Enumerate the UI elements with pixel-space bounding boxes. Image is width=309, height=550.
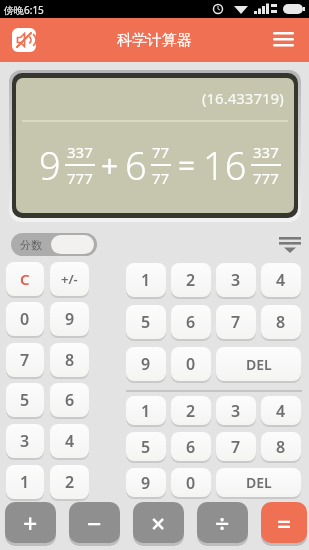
staticText: 8 <box>276 436 286 458</box>
button[interactable]: 1 <box>6 465 44 499</box>
staticText: 3 <box>231 269 241 291</box>
staticText: 7 <box>20 349 30 371</box>
button[interactable]: 5 <box>126 432 166 461</box>
staticText: 3 <box>231 400 241 422</box>
staticText: 6 <box>65 389 75 411</box>
staticText: 5 <box>141 311 151 333</box>
button[interactable] <box>275 232 305 258</box>
button[interactable]: 7 <box>216 432 256 461</box>
button[interactable]: 8 <box>261 305 301 339</box>
button[interactable]: 9 <box>50 302 89 336</box>
button[interactable]: 6 <box>171 305 211 339</box>
staticText: + <box>23 506 38 540</box>
button[interactable]: 8 <box>261 432 301 461</box>
button[interactable]: 7 <box>6 343 44 377</box>
staticText: 77 <box>152 168 170 188</box>
staticText: ÷ <box>215 506 230 540</box>
button[interactable]: 3 <box>216 263 256 297</box>
button[interactable]: 2 <box>50 465 89 499</box>
staticText: C <box>20 269 30 289</box>
staticText: + <box>101 145 119 186</box>
staticText: DEL <box>246 473 272 492</box>
staticText: 科学计算器 <box>117 31 192 50</box>
button[interactable]: 6 <box>50 383 89 417</box>
button[interactable]: C <box>6 262 44 296</box>
staticText: 337 <box>253 142 279 162</box>
staticText: 16 <box>203 139 247 191</box>
button[interactable]: 8 <box>50 343 89 377</box>
button[interactable]: × <box>133 502 184 543</box>
button[interactable]: = <box>261 502 307 543</box>
button[interactable]: 5 <box>6 383 44 417</box>
staticText: 0 <box>186 353 196 375</box>
staticText: 2 <box>186 400 196 422</box>
staticText: 6 <box>186 311 196 333</box>
button[interactable]: DEL <box>216 468 301 497</box>
staticText: 9 <box>65 308 75 330</box>
button[interactable]: + <box>5 502 56 543</box>
staticText: 777 <box>67 168 93 188</box>
staticText: 4 <box>276 269 286 291</box>
staticText: 0 <box>186 472 196 494</box>
staticText: 1 <box>20 471 30 493</box>
staticText: 3 <box>20 430 30 452</box>
button[interactable]: 5 <box>126 305 166 339</box>
staticText: 2 <box>65 471 75 493</box>
staticText: 1 <box>141 269 151 291</box>
button[interactable]: 1 <box>126 396 166 425</box>
staticText: 6 <box>186 436 196 458</box>
staticText: 8 <box>65 349 75 371</box>
button[interactable]: 0 <box>171 468 211 497</box>
button[interactable]: 9 <box>126 468 166 497</box>
staticText: 1 <box>141 400 151 422</box>
staticText: 2 <box>186 269 196 291</box>
staticText: +/- <box>61 270 78 288</box>
staticText: 77 <box>152 142 170 162</box>
button[interactable]: 2 <box>171 396 211 425</box>
staticText: 0 <box>20 308 30 330</box>
staticText: DEL <box>246 355 272 374</box>
staticText: 傍晚6:15 <box>4 3 44 17</box>
staticText: 7 <box>231 311 241 333</box>
staticText: 6 <box>125 139 147 191</box>
button[interactable]: +/- <box>50 262 89 296</box>
button[interactable] <box>268 26 298 54</box>
button[interactable]: 4 <box>261 263 301 297</box>
button[interactable]: 3 <box>216 396 256 425</box>
staticText: 4 <box>276 400 286 422</box>
staticText: (16.433719) <box>202 88 284 108</box>
staticText: 4 <box>65 430 75 452</box>
button[interactable]: − <box>69 502 120 543</box>
staticText: 777 <box>253 168 279 188</box>
button[interactable]: 0 <box>6 302 44 336</box>
button[interactable]: 4 <box>261 396 301 425</box>
button[interactable]: 1 <box>126 263 166 297</box>
staticText: 5 <box>141 436 151 458</box>
button[interactable]: 3 <box>6 424 44 458</box>
staticText: × <box>151 506 166 540</box>
staticText: 9 <box>141 353 151 375</box>
button[interactable]: 0 <box>171 347 211 381</box>
button[interactable]: 9 <box>126 347 166 381</box>
staticText: 8 <box>276 311 286 333</box>
button[interactable]: 2 <box>171 263 211 297</box>
button[interactable]: 分数 <box>11 233 97 256</box>
staticText: 分数 <box>20 238 42 252</box>
staticText: = <box>277 506 292 540</box>
staticText: 9 <box>141 472 151 494</box>
staticText: = <box>178 145 196 186</box>
button[interactable] <box>12 28 36 52</box>
button[interactable]: 6 <box>171 432 211 461</box>
staticText: 337 <box>67 142 93 162</box>
button[interactable]: DEL <box>216 347 301 381</box>
staticText: 5 <box>20 389 30 411</box>
staticText: 9 <box>39 139 61 191</box>
staticText: − <box>87 506 102 540</box>
button[interactable]: ÷ <box>197 502 248 543</box>
staticText: 7 <box>231 436 241 458</box>
button[interactable]: 7 <box>216 305 256 339</box>
button[interactable]: 4 <box>50 424 89 458</box>
